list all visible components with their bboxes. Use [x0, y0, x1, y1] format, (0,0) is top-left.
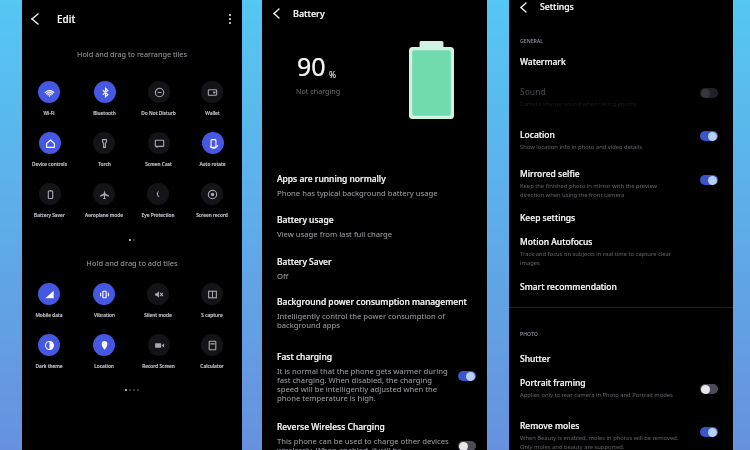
button[interactable]: Do Not Disturb	[141, 81, 176, 117]
button[interactable]: Wallet	[201, 81, 223, 117]
staticText: Location	[520, 129, 555, 141]
staticText: Not charging	[296, 86, 341, 96]
button[interactable]: Toggle	[700, 427, 718, 437]
staticText: Phone has typical background battery usa…	[277, 188, 481, 198]
button[interactable]: Smart recommendation	[509, 281, 733, 293]
staticText: Battery	[293, 7, 325, 19]
staticText: Battery Saver	[34, 212, 65, 219]
staticText: Mirrored selfie	[520, 168, 580, 180]
button[interactable]: Eye Protection	[141, 183, 175, 219]
button[interactable]: Portrait framing	[509, 377, 733, 399]
button[interactable]: Watermark	[509, 56, 733, 68]
button[interactable]: Screen record	[196, 183, 228, 219]
button[interactable]: Location	[93, 334, 115, 370]
staticText: Auto rotate	[199, 161, 226, 168]
staticText: Track and focus on subjects in real time…	[520, 250, 692, 267]
staticText: PHOTO	[520, 330, 538, 337]
button[interactable]: Aeroplane mode	[85, 183, 123, 219]
staticText: Location	[94, 363, 114, 370]
staticText: Screen record	[196, 212, 228, 219]
staticText: Mobile data	[35, 312, 63, 319]
staticText: Off	[277, 271, 481, 281]
button[interactable]: Toggle	[700, 131, 718, 141]
staticText: When Beauty is enabled, moles in photos …	[520, 434, 681, 450]
button[interactable]: Motion Autofocus	[509, 236, 733, 267]
staticText: Settings	[540, 1, 574, 13]
button[interactable]: Wi-Fi	[38, 81, 60, 117]
button[interactable]: Keep settings	[509, 212, 733, 224]
button[interactable]: Battery Saver	[34, 183, 65, 219]
button[interactable]: Remove moles	[509, 420, 733, 450]
staticText: Screen Cast	[145, 161, 172, 168]
staticText: %	[329, 69, 337, 81]
button[interactable]: Battery Saver	[262, 256, 487, 281]
button[interactable]: Toggle	[700, 88, 718, 98]
button[interactable]: Auto rotate	[199, 132, 226, 168]
staticText: Vibration	[94, 312, 115, 319]
button[interactable]: Vibration	[93, 283, 115, 319]
staticText: Shutter	[520, 353, 551, 365]
button[interactable]: Toggle	[700, 384, 718, 394]
button[interactable]: Bluetooth	[93, 81, 116, 117]
staticText: Aeroplane mode	[85, 212, 123, 219]
button[interactable]: Apps are running normally	[262, 173, 487, 198]
button[interactable]: Torch	[93, 132, 115, 168]
button[interactable]: Mirrored selfie	[509, 168, 733, 199]
button[interactable]: Fast charging	[262, 351, 487, 403]
button[interactable]: Sound	[509, 86, 733, 108]
staticText: Battery usage	[277, 214, 334, 226]
staticText: View usage from last full charge	[277, 229, 481, 239]
staticText: Edit	[57, 12, 76, 26]
staticText: Smart recommendation	[520, 281, 617, 293]
button[interactable]: Toggle	[458, 441, 476, 450]
button[interactable]: Silent mode	[144, 283, 172, 319]
staticText: Dark theme	[35, 363, 63, 370]
button[interactable]: Shutter	[509, 353, 733, 365]
button[interactable]: Background power consumption management	[262, 296, 487, 330]
staticText: Apps are running normally	[277, 173, 386, 185]
button[interactable]: Screen Cast	[145, 132, 172, 168]
button[interactable]: Device controls	[32, 132, 67, 168]
staticText: Do Not Disturb	[141, 110, 176, 117]
staticText: Hold and drag to rearrange tiles	[22, 49, 242, 59]
staticText: Torch	[98, 161, 111, 168]
staticText: Keep the finished photo in mirror with t…	[520, 182, 681, 199]
button[interactable]: Toggle	[700, 175, 718, 185]
staticText: Silent mode	[144, 312, 172, 319]
staticText: Wallet	[205, 110, 220, 117]
button[interactable]: More options	[220, 9, 240, 29]
staticText: Background power consumption management	[277, 296, 467, 308]
button[interactable]: Reverse Wireless Charging	[262, 421, 487, 450]
button[interactable]: Calculator	[200, 334, 224, 370]
button[interactable]: Mobile data	[35, 283, 63, 319]
staticText: Battery Saver	[277, 256, 332, 268]
staticText: Fast charging	[277, 351, 332, 363]
staticText: Wi-Fi	[43, 110, 55, 117]
staticText: Remove moles	[520, 420, 580, 432]
staticText: Keep settings	[520, 212, 576, 224]
staticText: Motion Autofocus	[520, 236, 593, 248]
staticText: Sound	[520, 86, 546, 98]
button[interactable]: Back	[515, 0, 531, 14]
staticText: Device controls	[32, 161, 67, 168]
staticText: S capture	[201, 312, 223, 319]
staticText: Camera shutter sound when taking photos	[520, 100, 727, 108]
button[interactable]: Dark theme	[35, 334, 63, 370]
button[interactable]: Back	[268, 5, 284, 21]
staticText: 90	[297, 49, 326, 83]
staticText: It is normal that the phone gets warmer …	[277, 366, 453, 403]
staticText: Bluetooth	[93, 110, 116, 117]
button[interactable]: Toggle	[458, 371, 476, 381]
staticText: Applies only to rear camera in Photo and…	[520, 391, 681, 399]
staticText: Calculator	[200, 363, 224, 370]
staticText: This phone can be used to charge other d…	[277, 436, 453, 450]
button[interactable]: Record Screen	[142, 334, 175, 370]
staticText: Show location info in photo and video de…	[520, 143, 727, 151]
button[interactable]: Back	[25, 9, 45, 29]
staticText: Watermark	[520, 56, 566, 68]
button[interactable]: S capture	[201, 283, 223, 319]
button[interactable]: Battery usage	[262, 214, 487, 239]
staticText: Eye Protection	[141, 212, 175, 219]
staticText: Intelligently control the power consumpt…	[277, 311, 454, 330]
button[interactable]: Location	[509, 129, 733, 151]
